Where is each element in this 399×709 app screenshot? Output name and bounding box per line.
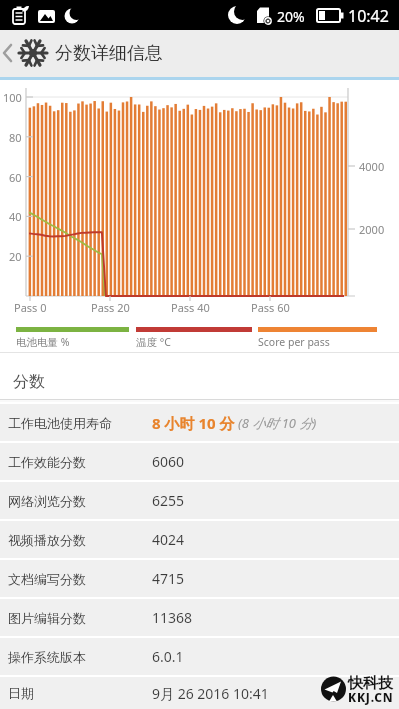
- button[interactable]: 工作电池使用寿命: [0, 404, 399, 441]
- staticText: 40: [9, 209, 22, 224]
- staticText: 视频播放分数: [8, 532, 86, 548]
- staticText: 网络浏览分数: [8, 493, 86, 509]
- staticText: 工作电池使用寿命: [8, 415, 112, 431]
- button[interactable]: 视频播放分数: [0, 521, 399, 558]
- staticText: 电池电量 %: [16, 335, 70, 349]
- staticText: 4000: [359, 159, 385, 174]
- staticText: 6060: [152, 452, 185, 471]
- button[interactable]: 网络浏览分数: [0, 482, 399, 519]
- staticText: 6255: [152, 491, 185, 510]
- staticText: (8 小时 10 分): [238, 414, 317, 432]
- staticText: 日期: [8, 685, 34, 701]
- staticText: 100: [3, 90, 22, 105]
- staticText: Pass 20: [91, 300, 130, 315]
- staticText: 4715: [152, 569, 185, 588]
- staticText: Score per pass: [258, 335, 330, 349]
- staticText: 11368: [152, 608, 193, 627]
- staticText: 工作效能分数: [8, 454, 86, 470]
- button[interactable]: 工作效能分数: [0, 443, 399, 480]
- button[interactable]: [0, 30, 16, 76]
- staticText: 10:42: [348, 5, 389, 27]
- button[interactable]: 图片编辑分数: [0, 599, 399, 636]
- staticText: 分数: [13, 372, 45, 392]
- staticText: 图片编辑分数: [8, 610, 86, 626]
- staticText: 6.0.1: [152, 647, 184, 666]
- staticText: 分数详细信息: [55, 42, 163, 65]
- staticText: 2000: [359, 222, 385, 237]
- staticText: Pass 0: [14, 300, 47, 315]
- staticText: 4024: [152, 530, 185, 549]
- staticText: KKJ.CN: [348, 689, 394, 705]
- button[interactable]: 文档编写分数: [0, 560, 399, 597]
- button[interactable]: 日期: [0, 677, 399, 709]
- staticText: 温度 °C: [136, 335, 171, 349]
- staticText: Pass 60: [251, 300, 290, 315]
- staticText: 20: [9, 249, 22, 264]
- staticText: Pass 40: [171, 300, 210, 315]
- staticText: 20%: [277, 7, 305, 26]
- staticText: 快科技: [348, 674, 393, 693]
- staticText: 文档编写分数: [8, 571, 86, 587]
- staticText: 9月 26 2016 10:41: [152, 684, 269, 703]
- staticText: 80: [9, 130, 22, 145]
- button[interactable]: 操作系统版本: [0, 638, 399, 675]
- staticText: 8 小时 10 分: [152, 413, 235, 433]
- staticText: 操作系统版本: [8, 649, 86, 665]
- staticText: 60: [9, 170, 22, 185]
